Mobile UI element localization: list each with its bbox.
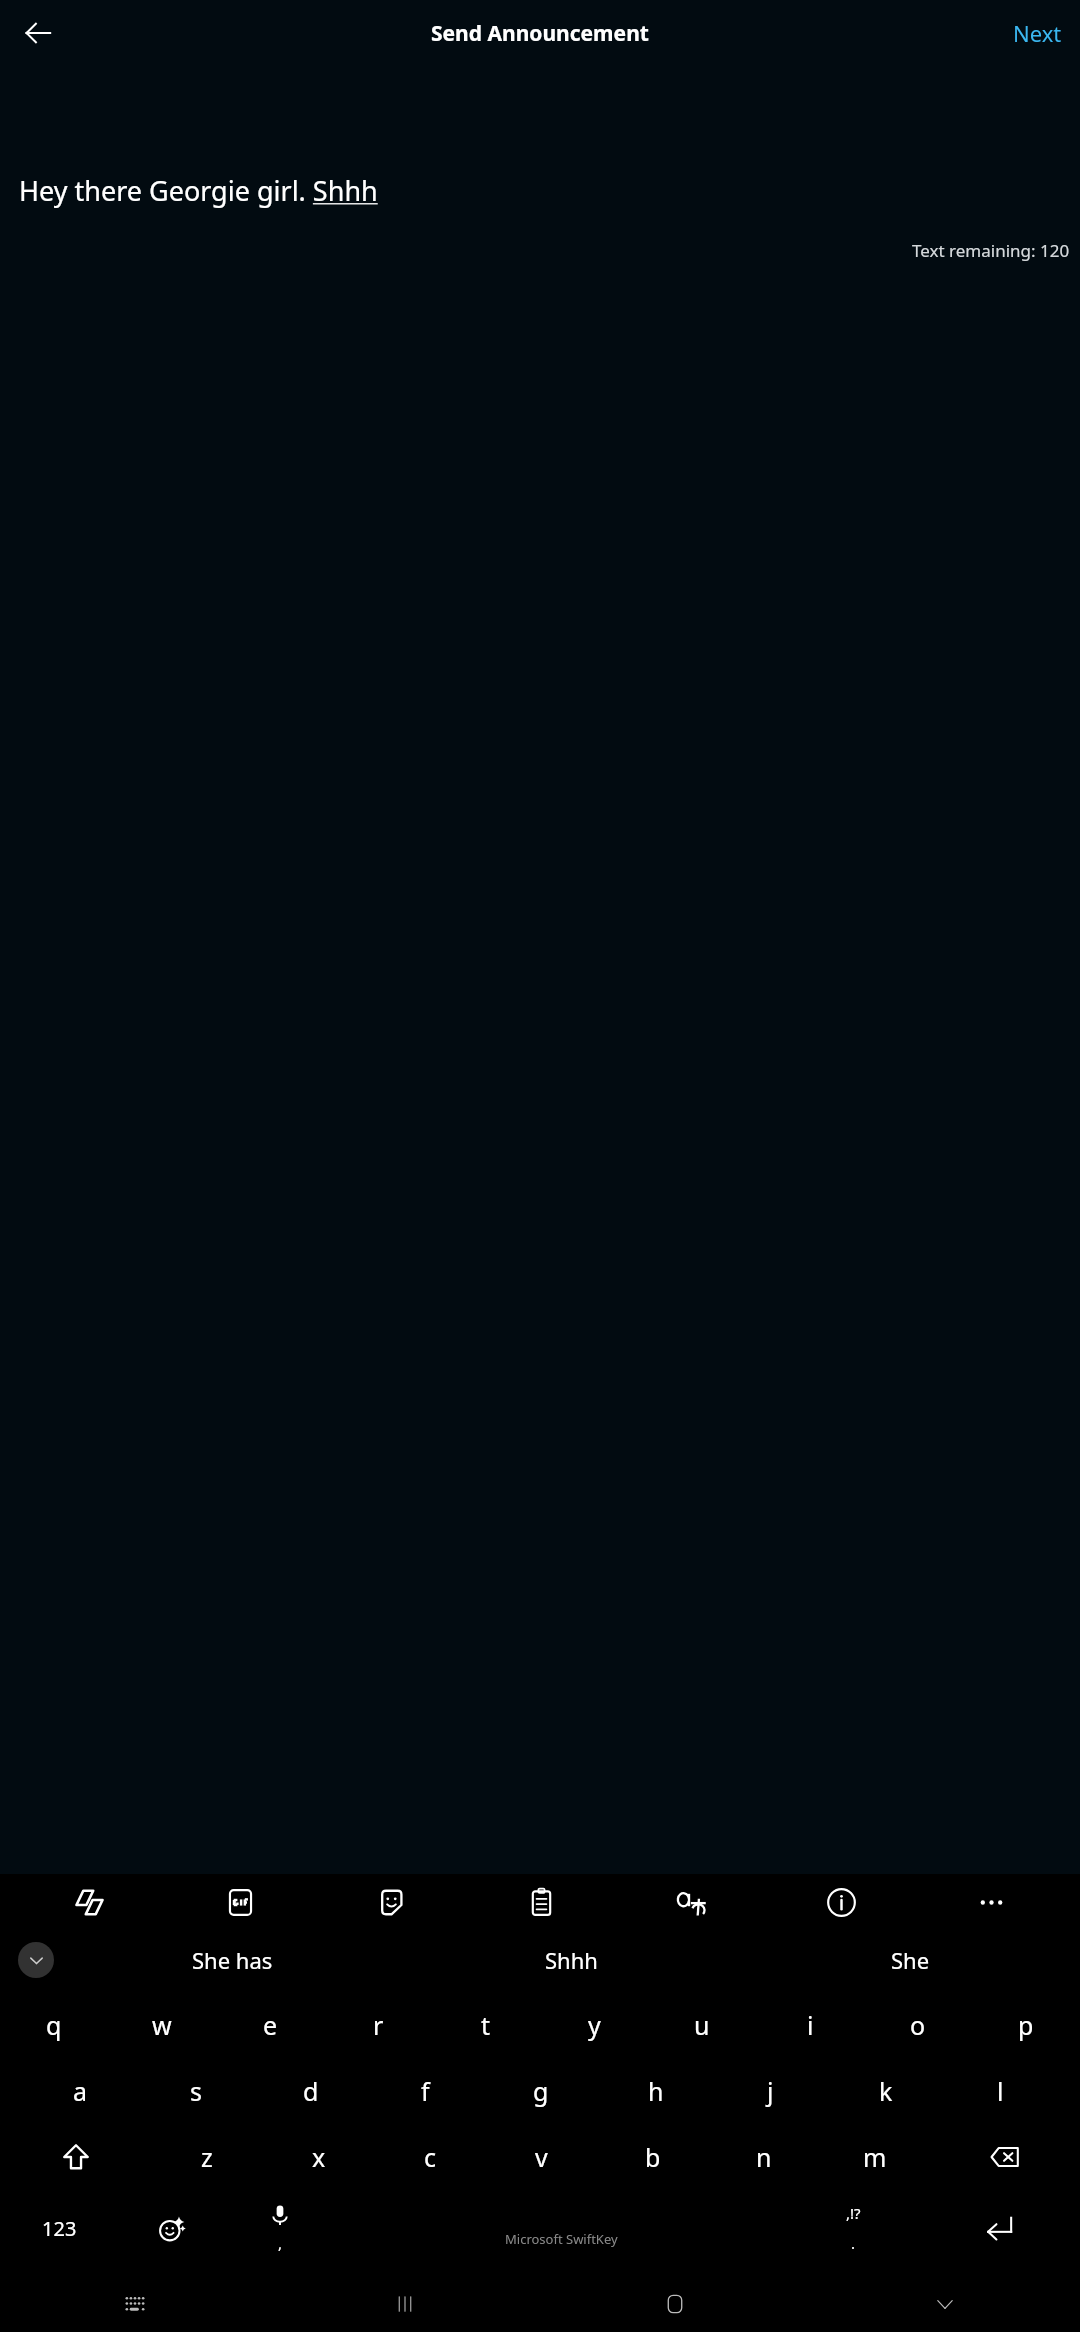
staticText: 123 bbox=[42, 2215, 77, 2242]
button[interactable]: t bbox=[432, 1992, 540, 2058]
button[interactable]: Hide keyboard bbox=[810, 2276, 1080, 2332]
button[interactable]: a bbox=[22, 2058, 138, 2124]
staticText: Text remaining: 120 bbox=[912, 239, 1070, 262]
button[interactable]: k bbox=[828, 2058, 943, 2124]
button[interactable]: Back bbox=[14, 9, 62, 57]
button[interactable]: She bbox=[741, 1931, 1080, 1988]
button[interactable]: Emoji bbox=[118, 2190, 226, 2266]
button[interactable]: b bbox=[597, 2124, 708, 2190]
staticText: Hey there Georgie girl. Shhh bbox=[19, 172, 378, 209]
button[interactable]: Enter bbox=[918, 2190, 1080, 2266]
button[interactable]: p bbox=[972, 1992, 1080, 2058]
button[interactable]: g bbox=[483, 2058, 598, 2124]
button[interactable]: v bbox=[486, 2124, 597, 2190]
staticText: w bbox=[152, 2008, 172, 2042]
staticText: Send Announcement bbox=[431, 19, 649, 48]
staticText: b bbox=[645, 2140, 661, 2174]
staticText: q bbox=[46, 2008, 62, 2042]
staticText: t bbox=[481, 2008, 491, 2042]
staticText: x bbox=[312, 2140, 326, 2174]
button[interactable]: She has bbox=[62, 1931, 402, 1988]
staticText: l bbox=[997, 2074, 1004, 2108]
staticText: She has bbox=[192, 1945, 273, 1975]
button[interactable]: r bbox=[324, 1992, 432, 2058]
button[interactable]: Backspace bbox=[930, 2124, 1080, 2190]
staticText: p bbox=[1018, 2008, 1034, 2042]
staticText: h bbox=[648, 2074, 664, 2108]
button[interactable]: Voice input bbox=[226, 2190, 334, 2266]
staticText: Shhh bbox=[545, 1945, 598, 1975]
button[interactable]: j bbox=[713, 2058, 828, 2124]
staticText: o bbox=[910, 2008, 926, 2042]
staticText: i bbox=[807, 2008, 814, 2042]
button[interactable]: More bbox=[916, 1874, 1066, 1931]
staticText: u bbox=[694, 2008, 710, 2042]
button[interactable]: f bbox=[368, 2058, 483, 2124]
button[interactable]: n bbox=[708, 2124, 819, 2190]
staticText: f bbox=[421, 2074, 430, 2108]
staticText: v bbox=[535, 2140, 548, 2174]
staticText: c bbox=[424, 2140, 437, 2174]
button[interactable]: o bbox=[864, 1992, 972, 2058]
button[interactable]: z bbox=[151, 2124, 263, 2190]
staticText: e bbox=[263, 2008, 278, 2042]
button[interactable]: Expand bbox=[18, 1942, 54, 1978]
button[interactable]: Translate bbox=[616, 1874, 766, 1931]
button[interactable]: Stickers bbox=[316, 1874, 466, 1931]
button[interactable]: s bbox=[138, 2058, 253, 2124]
staticText: r bbox=[373, 2008, 384, 2042]
button[interactable]: c bbox=[375, 2124, 486, 2190]
staticText: Next bbox=[1013, 18, 1062, 48]
button[interactable]: Home bbox=[540, 2276, 810, 2332]
button[interactable]: e bbox=[216, 1992, 324, 2058]
button[interactable]: i bbox=[756, 1992, 864, 2058]
staticText: y bbox=[588, 2008, 601, 2042]
staticText: z bbox=[201, 2140, 213, 2174]
button[interactable]: Shhh bbox=[402, 1931, 741, 1988]
button[interactable]: Recents bbox=[270, 2276, 540, 2332]
staticText: a bbox=[73, 2074, 88, 2108]
button[interactable]: Punctuation bbox=[788, 2190, 918, 2266]
staticText: Microsoft SwiftKey bbox=[505, 2230, 618, 2248]
button[interactable]: h bbox=[598, 2058, 713, 2124]
button[interactable]: Next bbox=[1005, 12, 1070, 54]
staticText: j bbox=[767, 2074, 774, 2108]
staticText: d bbox=[303, 2074, 319, 2108]
button[interactable]: d bbox=[253, 2058, 368, 2124]
staticText: k bbox=[879, 2074, 893, 2108]
button[interactable]: 123 bbox=[0, 2190, 118, 2266]
staticText: . bbox=[851, 2233, 856, 2253]
button[interactable]: Switch keyboard bbox=[0, 2276, 270, 2332]
button[interactable]: u bbox=[648, 1992, 756, 2058]
staticText: m bbox=[863, 2140, 887, 2174]
staticText: s bbox=[190, 2074, 202, 2108]
button[interactable]: Info bbox=[766, 1874, 916, 1931]
button[interactable]: q bbox=[0, 1992, 108, 2058]
staticText: n bbox=[756, 2140, 772, 2174]
staticText: g bbox=[533, 2074, 549, 2108]
button[interactable]: GIF bbox=[165, 1874, 316, 1931]
button[interactable]: Space bbox=[334, 2190, 788, 2266]
button[interactable]: l bbox=[943, 2058, 1058, 2124]
button[interactable]: w bbox=[108, 1992, 216, 2058]
staticText: ,!? bbox=[846, 2203, 861, 2223]
button[interactable]: Shift bbox=[0, 2124, 151, 2190]
button[interactable]: SwiftKey bbox=[14, 1874, 165, 1931]
button[interactable]: y bbox=[540, 1992, 648, 2058]
staticText: , bbox=[278, 2233, 283, 2253]
staticText: She bbox=[891, 1945, 930, 1975]
button[interactable]: x bbox=[263, 2124, 375, 2190]
button[interactable]: m bbox=[819, 2124, 930, 2190]
button[interactable]: Clipboard bbox=[466, 1874, 616, 1931]
